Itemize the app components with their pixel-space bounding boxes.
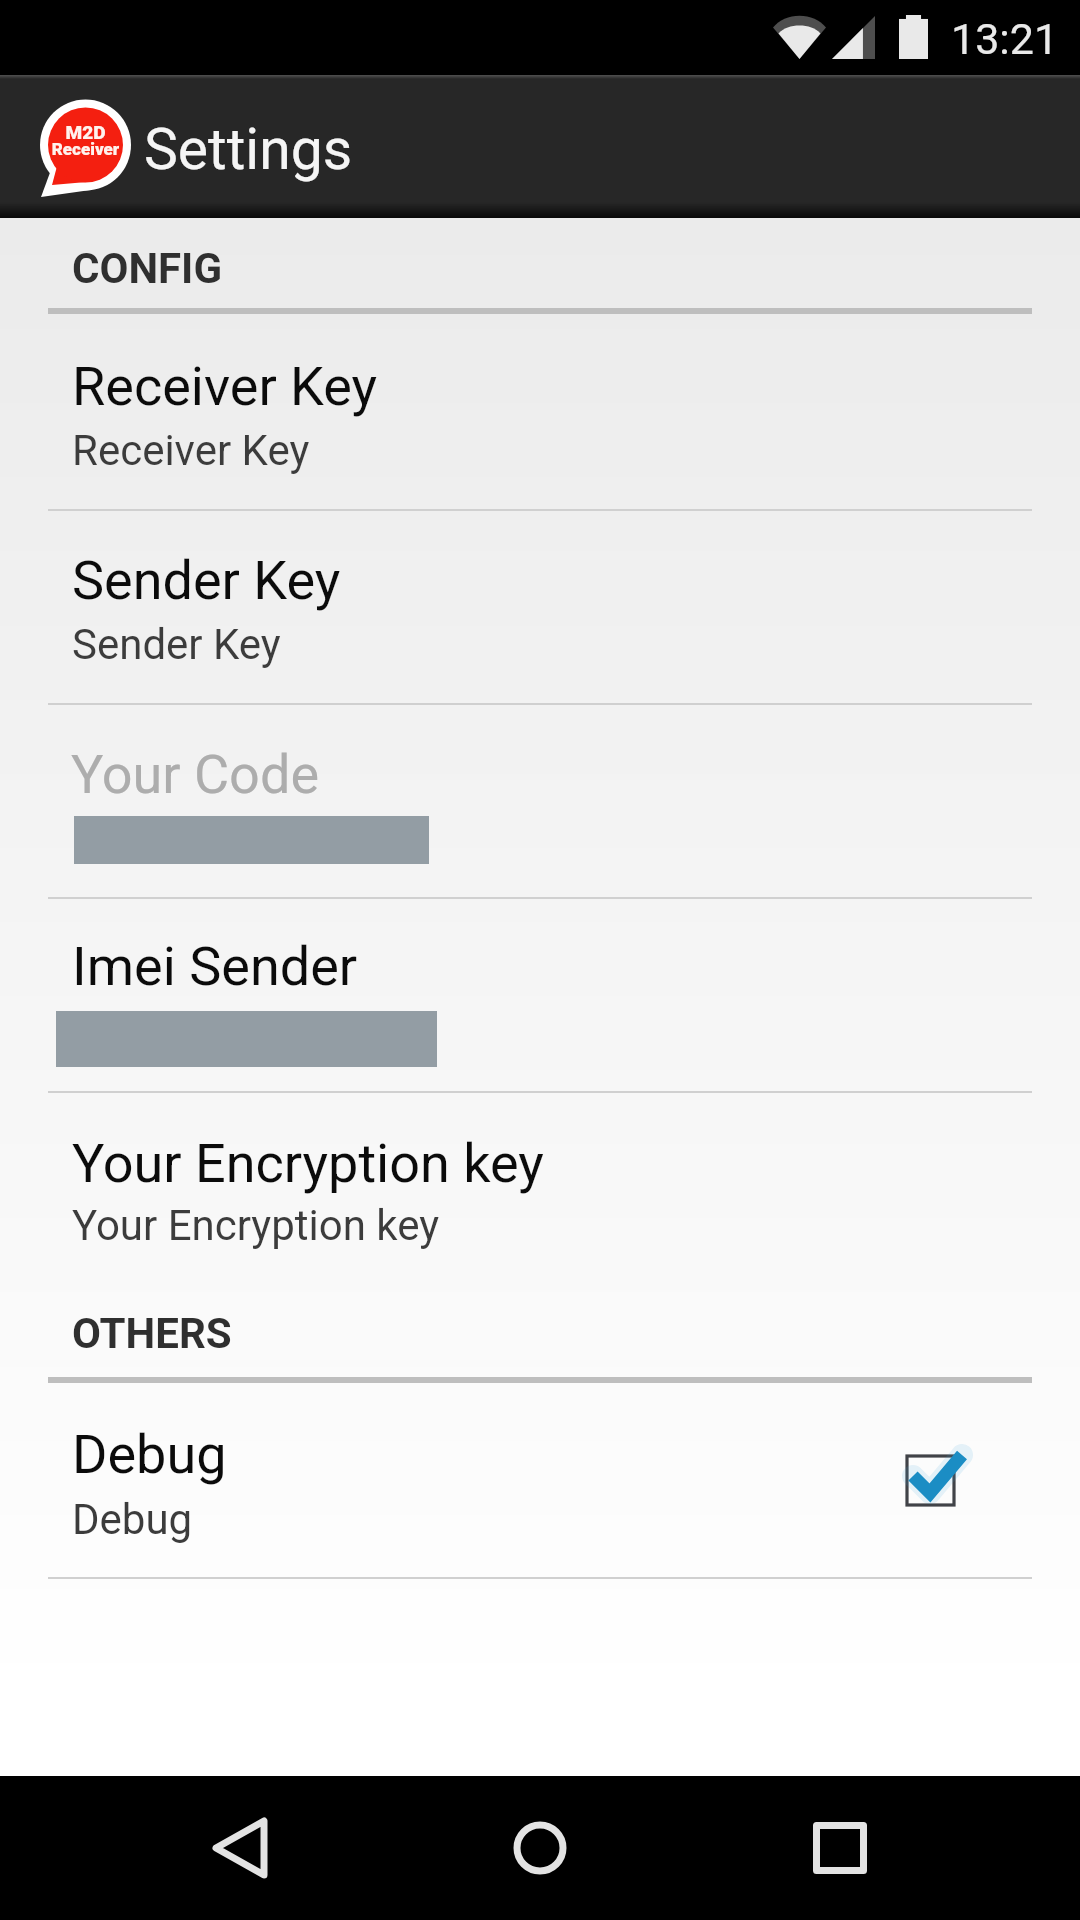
staticText: Your Encryption key bbox=[72, 1201, 440, 1250]
staticText: Receiver Key bbox=[72, 355, 378, 418]
button[interactable]: Debug checkbox bbox=[868, 1418, 996, 1546]
staticText: Receiver Key bbox=[72, 426, 310, 475]
staticText: CONFIG bbox=[72, 244, 223, 293]
button[interactable]: Back bbox=[180, 1788, 300, 1908]
staticText: 13:21 bbox=[951, 14, 1059, 64]
button[interactable]: Recent apps bbox=[780, 1788, 900, 1908]
button[interactable]: Debug bbox=[0, 1383, 1080, 1577]
staticText: Debug bbox=[72, 1423, 227, 1486]
staticText: Sender Key bbox=[72, 620, 281, 669]
staticText: Receiver bbox=[43, 139, 128, 159]
button[interactable]: Receiver Key bbox=[0, 314, 1080, 509]
staticText: Sender Key bbox=[72, 549, 341, 612]
staticText: M2D bbox=[43, 121, 128, 143]
button[interactable]: Home bbox=[480, 1788, 600, 1908]
staticText: Your Code bbox=[71, 743, 320, 806]
staticText: Settings bbox=[144, 116, 353, 183]
staticText: OTHERS bbox=[72, 1309, 232, 1358]
button[interactable]: Your Code bbox=[0, 705, 1080, 897]
staticText: Imei Sender bbox=[72, 935, 358, 998]
button[interactable]: Imei Sender bbox=[0, 899, 1080, 1091]
staticText: Debug bbox=[72, 1495, 193, 1544]
button[interactable]: Sender Key bbox=[0, 511, 1080, 703]
button[interactable]: Your Encryption key bbox=[0, 1093, 1080, 1285]
staticText: Your Encryption key bbox=[72, 1132, 544, 1195]
